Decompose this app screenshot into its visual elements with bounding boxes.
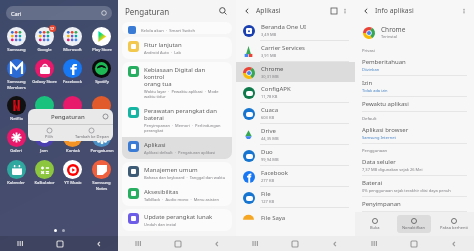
button[interactable]: Izin (355, 76, 474, 96)
button[interactable]: Pilih (28, 125, 70, 141)
staticText: Kebiasaan Digital dan kontrol orang tua (144, 66, 226, 88)
staticText: Cuaca (261, 106, 279, 114)
staticText: Aplikasi (256, 6, 281, 15)
staticText: Samsung Notes (92, 180, 111, 191)
staticText: ConfigAPK (261, 85, 291, 93)
button[interactable]: Kelola akun · Smart Switch (122, 22, 232, 34)
button[interactable]: Samsung (2, 25, 30, 55)
button[interactable]: Tambah ke Depan (70, 125, 113, 141)
button[interactable]: Netflix (2, 94, 30, 124)
button[interactable]: Cari (6, 6, 112, 20)
button[interactable]: Recents (118, 236, 158, 251)
button[interactable]: Update perangkat lunak (122, 209, 232, 231)
button[interactable]: Microsoft (58, 25, 87, 55)
button[interactable]: Back (79, 236, 118, 251)
button[interactable]: Sort (328, 5, 339, 16)
button[interactable]: Manajemen umum (122, 162, 232, 184)
button[interactable]: Penyimpanan (355, 197, 474, 211)
button[interactable]: Recents (355, 236, 394, 251)
button[interactable]: Perawatan perangkat dan baterai (122, 103, 232, 137)
button[interactable]: Data seluler (355, 155, 474, 175)
button[interactable]: Recents (236, 236, 275, 251)
button[interactable]: Galaxy Store (30, 57, 58, 87)
button[interactable]: Carrier Services (236, 41, 355, 61)
button[interactable]: Nonaktifkan (397, 215, 431, 233)
staticText: File Saya (261, 214, 286, 222)
staticText: 3,49 MB (261, 32, 277, 37)
staticText: YT Music (64, 180, 82, 186)
button[interactable]: Paksa berhenti (434, 212, 474, 236)
button[interactable]: Back (315, 236, 355, 251)
button[interactable]: Buka (355, 212, 394, 236)
button[interactable] (30, 94, 58, 117)
staticText: Bahasa dan keyboard · Tanggal dan waktu (144, 175, 226, 180)
button[interactable]: Facebook (236, 166, 355, 186)
button[interactable]: Facebook (58, 57, 87, 87)
staticText: File (261, 190, 271, 198)
button[interactable]: Chrome (355, 20, 474, 44)
button[interactable]: Aksesibilitas (122, 184, 232, 206)
button[interactable] (58, 94, 87, 117)
staticText: Chrome (381, 25, 406, 34)
staticText: Spotify (95, 79, 109, 85)
staticText: Duo (261, 148, 273, 156)
staticText: 603 KB (261, 115, 274, 120)
button[interactable]: Cuaca (236, 103, 355, 123)
staticText: Chrome (261, 65, 284, 73)
staticText: 44,35 MB (261, 136, 279, 141)
button[interactable]: Home (40, 236, 79, 251)
staticText: Aplikasi default · Pengaturan aplikasi (144, 150, 216, 155)
staticText: Data seluler (362, 158, 396, 166)
button[interactable]: Back (197, 236, 236, 251)
button[interactable]: Samsung Notes (87, 158, 116, 193)
button[interactable]: Pengaturan (28, 109, 113, 124)
button[interactable]: Fitur lanjutan (122, 37, 232, 59)
staticText: Unduh dan instal (144, 222, 177, 227)
button[interactable]: 17 (30, 25, 58, 55)
button[interactable]: Galeri (2, 126, 30, 156)
button[interactable] (87, 94, 116, 117)
button[interactable]: Samsung Members (2, 57, 30, 92)
button[interactable]: Aplikasi (122, 137, 232, 159)
button[interactable]: Home (394, 236, 434, 251)
staticText: 3,91 MB (261, 53, 277, 58)
staticText: Aplikasi browser (362, 126, 409, 134)
button[interactable]: More options (339, 5, 350, 16)
button[interactable]: File Saya (236, 208, 355, 227)
button[interactable]: Back (434, 236, 474, 251)
staticText: Kontak (66, 148, 80, 154)
button[interactable]: Pengaturan (87, 126, 116, 156)
button[interactable]: File (236, 187, 355, 207)
button[interactable]: Jam (30, 126, 58, 156)
staticText: Netflix (10, 116, 23, 122)
button[interactable]: Duo (236, 145, 355, 165)
button[interactable]: More options (458, 5, 469, 16)
button[interactable]: Beranda One UI (236, 20, 355, 40)
button[interactable]: Kebiasaan Digital dan kontrol orang tua (122, 62, 232, 103)
button[interactable]: Pewaktu aplikasi (355, 97, 474, 111)
button[interactable]: Baterai (355, 176, 474, 196)
button[interactable]: YT Music (58, 158, 87, 188)
button[interactable]: Spotify (87, 57, 116, 87)
staticText: Penggunaan (362, 148, 388, 154)
staticText: Pengaturan (90, 148, 114, 154)
button[interactable]: Aplikasi browser (355, 123, 474, 143)
button[interactable]: Home (275, 236, 315, 251)
button[interactable]: ConfigAPK (236, 82, 355, 102)
button[interactable]: Pemberitahuan (355, 55, 474, 75)
button[interactable]: Search (217, 5, 229, 17)
button[interactable]: Kalender (2, 158, 30, 188)
button[interactable]: Play Store (87, 25, 116, 55)
staticText: Penyimpanan · Memori · Perlindungan pera… (144, 123, 221, 133)
button[interactable]: Kalkulator (30, 158, 58, 188)
button[interactable]: Back (360, 5, 371, 16)
staticText: Privasi (362, 48, 375, 54)
button[interactable]: Chrome (236, 62, 355, 82)
staticText: Kalkulator (34, 180, 55, 186)
button[interactable]: Recents (0, 236, 40, 251)
button[interactable]: Drive (236, 124, 355, 144)
staticText: Diizinkan (362, 67, 380, 72)
button[interactable]: Back (241, 5, 252, 16)
button[interactable]: Home (158, 236, 197, 251)
button[interactable]: Kontak (58, 126, 87, 156)
